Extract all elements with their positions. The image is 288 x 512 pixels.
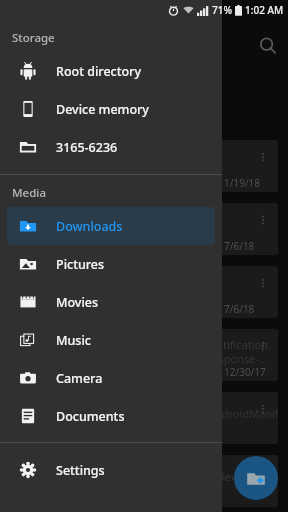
- button[interactable]: Settings: [7, 451, 215, 489]
- button[interactable]: Movies: [7, 283, 215, 321]
- button[interactable]: More options: [252, 272, 274, 294]
- staticText: Notification.: [208, 337, 272, 352]
- staticText: Documents: [56, 408, 125, 425]
- staticText: 1/19/18: [224, 176, 261, 190]
- staticText: Storage: [12, 30, 55, 46]
- button[interactable]: Device memory: [7, 90, 215, 128]
- staticText: Root directory: [56, 63, 142, 80]
- staticText: 71%: [212, 3, 232, 17]
- button[interactable]: Search: [250, 28, 286, 64]
- button[interactable]: 3165-6236: [7, 128, 215, 166]
- staticText: Media: [12, 185, 46, 201]
- button[interactable]: Camera: [7, 359, 215, 397]
- staticText: 12/30/17: [224, 365, 266, 379]
- button[interactable]: More options: [96, 140, 278, 192]
- staticText: Downloads: [56, 218, 123, 235]
- button[interactable]: AndroidManifest.xml: [96, 392, 278, 444]
- button[interactable]: Music: [7, 321, 215, 359]
- button[interactable]: More options: [252, 335, 274, 357]
- staticText: 3165-6236: [56, 139, 118, 156]
- staticText: 7/6/18: [224, 239, 255, 253]
- button[interactable]: index.xml: [96, 455, 278, 507]
- staticText: Settings: [56, 462, 105, 479]
- button[interactable]: Downloads: [7, 207, 215, 245]
- staticText: Movies: [56, 294, 99, 311]
- staticText: 1:02 AM: [245, 3, 284, 17]
- button[interactable]: More options: [96, 266, 278, 318]
- staticText: response-…: [208, 351, 268, 366]
- staticText: Device memory: [56, 101, 149, 118]
- button[interactable]: More options: [252, 461, 274, 483]
- staticText: 7/6/18: [224, 302, 255, 316]
- staticText: Pictures: [56, 256, 105, 273]
- button[interactable]: Notification.: [96, 329, 278, 381]
- button[interactable]: More options: [252, 398, 274, 420]
- button[interactable]: Documents: [7, 397, 215, 435]
- button[interactable]: More options: [252, 209, 274, 231]
- staticText: Camera: [56, 370, 103, 387]
- staticText: index.xml: [208, 469, 259, 484]
- button[interactable]: Root directory: [7, 52, 215, 90]
- button[interactable]: New folder: [234, 456, 278, 500]
- staticText: Music: [56, 332, 91, 349]
- button[interactable]: More options: [96, 203, 278, 255]
- button[interactable]: More options: [252, 146, 274, 168]
- button[interactable]: Pictures: [7, 245, 215, 283]
- staticText: AndroidManifest.xml: [208, 406, 278, 421]
